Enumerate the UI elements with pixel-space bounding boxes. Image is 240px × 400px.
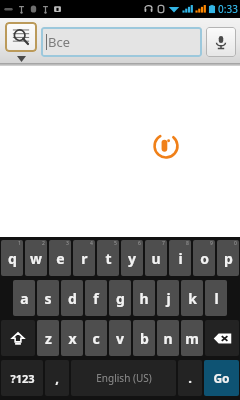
staticText: 1 (18, 240, 21, 247)
button[interactable]: r (73, 240, 95, 276)
button[interactable]: j (157, 280, 179, 316)
staticText: 3 (66, 240, 69, 247)
staticText: Go (213, 370, 230, 386)
button[interactable]: p (217, 240, 239, 276)
staticText: s (44, 289, 52, 308)
button[interactable]: o (193, 240, 215, 276)
button[interactable]: f (85, 280, 107, 316)
button[interactable]: z (37, 320, 59, 356)
staticText: d (68, 289, 77, 308)
staticText: r (81, 249, 88, 268)
staticText: 2 (42, 240, 45, 247)
staticText: 0:33 (218, 2, 238, 16)
button[interactable]: Backspace (205, 320, 239, 356)
button[interactable]: a (13, 280, 35, 316)
button[interactable]: m (181, 320, 203, 356)
button[interactable]: Shift (1, 320, 35, 356)
button[interactable]: d (61, 280, 83, 316)
staticText: c (92, 329, 100, 348)
button[interactable]: Go (204, 360, 239, 396)
staticText: 0 (234, 240, 237, 247)
staticText: p (224, 249, 233, 268)
staticText: o (200, 249, 209, 268)
staticText: Все (48, 33, 70, 51)
staticText: k (188, 289, 197, 308)
staticText: i (178, 249, 183, 268)
button[interactable]: Search category (4, 22, 38, 62)
staticText: n (163, 329, 173, 348)
button[interactable]: s (37, 280, 59, 316)
staticText: u (151, 249, 161, 268)
button[interactable]: , (45, 360, 69, 396)
staticText: h (139, 289, 149, 308)
button[interactable]: g (109, 280, 131, 316)
staticText: 4 (90, 240, 93, 247)
button[interactable]: n (157, 320, 179, 356)
button[interactable]: Voice search (206, 27, 236, 57)
button[interactable]: ?123 (1, 360, 43, 396)
button[interactable]: k (181, 280, 203, 316)
button[interactable]: Space (71, 360, 176, 396)
staticText: b (140, 329, 149, 348)
button[interactable]: . (178, 360, 202, 396)
button[interactable]: q (1, 240, 23, 276)
staticText: 8 (186, 240, 189, 247)
staticText: q (8, 249, 17, 268)
button[interactable]: x (61, 320, 83, 356)
staticText: x (68, 329, 77, 348)
staticText: f (93, 289, 99, 308)
staticText: 5 (114, 240, 117, 247)
button[interactable]: e (49, 240, 71, 276)
staticText: j (166, 289, 171, 308)
button[interactable]: b (133, 320, 155, 356)
button[interactable]: l (205, 280, 227, 316)
staticText: ?123 (10, 371, 35, 386)
staticText: l (214, 289, 219, 308)
staticText: English (US) (96, 371, 152, 385)
button[interactable]: u (145, 240, 167, 276)
staticText: 6 (138, 240, 141, 247)
staticText: e (56, 249, 65, 268)
staticText: v (116, 329, 124, 348)
button[interactable]: t (97, 240, 119, 276)
staticText: . (188, 369, 192, 387)
staticText: 9 (210, 240, 213, 247)
button[interactable]: y (121, 240, 143, 276)
staticText: g (116, 289, 125, 308)
staticText: , (55, 369, 59, 387)
staticText: z (45, 329, 52, 348)
staticText: 7 (162, 240, 165, 247)
button[interactable]: h (133, 280, 155, 316)
staticText: t (105, 249, 112, 268)
staticText: m (185, 329, 199, 348)
button[interactable]: v (109, 320, 131, 356)
staticText: a (20, 289, 29, 308)
staticText: y (128, 249, 136, 268)
button[interactable]: Все (41, 27, 202, 57)
button[interactable]: c (85, 320, 107, 356)
button[interactable]: w (25, 240, 47, 276)
button[interactable]: i (169, 240, 191, 276)
staticText: w (30, 249, 42, 268)
